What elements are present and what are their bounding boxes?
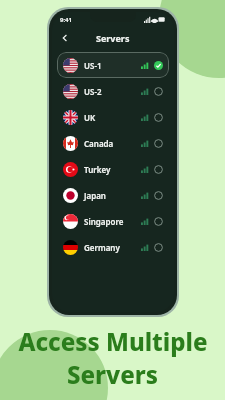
button[interactable]: Turkey — [57, 156, 169, 182]
staticText: Access Multiple — [18, 325, 208, 358]
staticText: Japan — [84, 190, 106, 201]
staticText: UK — [84, 112, 96, 123]
staticText: US-2 — [84, 86, 102, 97]
button[interactable]: US-1 — [57, 52, 169, 78]
button[interactable]: US-2 — [57, 78, 169, 104]
staticText: 9:41 — [60, 16, 72, 24]
button[interactable]: Singapore — [57, 208, 169, 234]
staticText: Servers — [96, 32, 130, 44]
staticText: Canada — [84, 138, 114, 149]
button[interactable]: Canada — [57, 130, 169, 156]
button[interactable]: UK — [57, 104, 169, 130]
staticText: Germany — [84, 242, 120, 253]
button[interactable]: Back — [57, 30, 73, 46]
button[interactable]: Japan — [57, 182, 169, 208]
staticText: Turkey — [84, 164, 111, 175]
staticText: Singapore — [84, 216, 124, 227]
button[interactable]: Germany — [57, 234, 169, 260]
staticText: US-1 — [84, 60, 102, 71]
staticText: Servers — [67, 358, 158, 391]
